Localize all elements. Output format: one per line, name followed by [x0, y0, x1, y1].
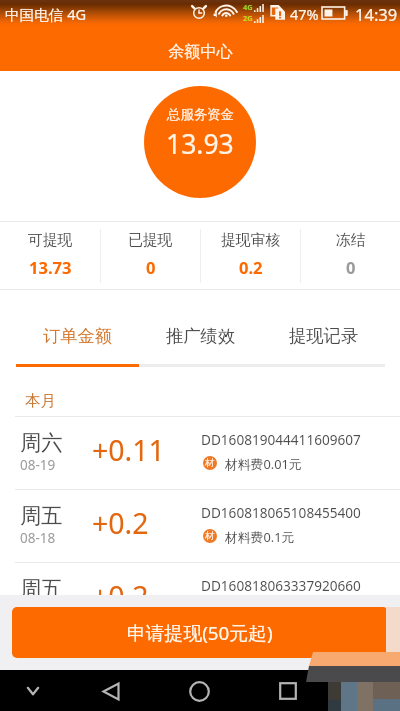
staticText: 材	[205, 530, 215, 542]
button[interactable]: Home	[179, 671, 219, 711]
staticText: 2G	[243, 13, 253, 23]
staticText: 材料费0.1元	[225, 528, 295, 545]
staticText: 4G	[243, 2, 253, 12]
staticText: +0.2	[92, 504, 149, 543]
staticText: 申请提现(50元起)	[127, 620, 273, 646]
button[interactable]: 推广绩效	[139, 290, 262, 364]
staticText: 08-18	[20, 602, 56, 620]
button[interactable]: 提现审核	[201, 222, 300, 289]
staticText: 余额中心	[168, 41, 233, 61]
staticText: 47%	[290, 4, 319, 24]
staticText: 材料费0.1元	[225, 601, 295, 618]
staticText: 14:39	[355, 3, 398, 25]
button[interactable]: Recent apps	[268, 671, 308, 711]
button[interactable]: 周五	[0, 490, 400, 562]
button[interactable]: Hide navigation bar	[13, 671, 53, 711]
staticText: 材	[205, 457, 215, 469]
staticText: DD160818063337920660	[201, 576, 361, 595]
staticText: 0.2	[239, 256, 263, 278]
staticText: 可提现	[28, 231, 73, 250]
button[interactable]: 提现记录	[262, 290, 385, 364]
staticText: 本月	[25, 391, 56, 411]
staticText: 08-19	[20, 456, 56, 474]
staticText: 13.73	[29, 256, 72, 278]
button[interactable]: 订单金额	[16, 290, 139, 364]
staticText: 周六	[20, 429, 63, 456]
staticText: 周五	[20, 502, 63, 529]
staticText: 提现记录	[289, 325, 359, 347]
button[interactable]: 申请提现(50元起)	[12, 607, 388, 658]
staticText: DD160819044411609607	[201, 430, 361, 449]
staticText: 0	[146, 256, 156, 278]
staticText: 08-18	[20, 529, 56, 547]
staticText: 13.93	[166, 126, 234, 162]
button[interactable]: 已提现	[101, 222, 200, 289]
staticText: 总服务资金	[167, 106, 234, 123]
staticText: 周五	[20, 575, 63, 602]
staticText: +0.11	[92, 431, 165, 470]
staticText: 材	[205, 603, 215, 615]
button[interactable]: 周六	[0, 417, 400, 489]
staticText: +0.2	[92, 577, 149, 616]
button[interactable]: 冻结	[301, 222, 400, 289]
staticText: 材料费0.01元	[225, 455, 302, 472]
staticText: 提现审核	[221, 231, 281, 250]
staticText: 中国电信 4G	[5, 4, 87, 24]
staticText: 已提现	[128, 231, 173, 250]
button[interactable]: Back	[91, 671, 131, 711]
staticText: 订单金额	[43, 325, 113, 347]
button[interactable]: 周五	[0, 563, 400, 635]
staticText: 0	[346, 256, 356, 278]
staticText: DD160818065108455400	[201, 503, 361, 522]
staticText: 推广绩效	[166, 325, 236, 347]
staticText: 冻结	[336, 231, 366, 250]
button[interactable]: 可提现	[0, 222, 100, 289]
